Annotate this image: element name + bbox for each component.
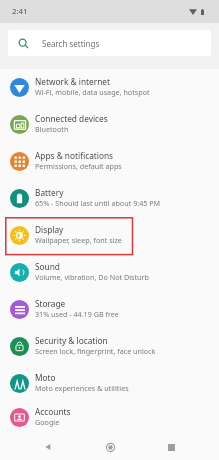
staticText: Wallpaper, sleep, font size [35, 235, 122, 245]
button[interactable]: Apps & notifications [0, 143, 219, 180]
button[interactable]: Recents [158, 434, 184, 460]
staticText: Accounts [35, 406, 71, 417]
button[interactable]: Search settings [8, 30, 211, 56]
button[interactable]: Connected devices [0, 106, 219, 143]
button[interactable]: Battery [0, 180, 219, 217]
staticText: Sound [35, 261, 60, 272]
staticText: Moto experiences & utilities [35, 383, 129, 393]
staticText: Security & location [35, 335, 108, 346]
staticText: Battery [35, 187, 64, 198]
staticText: Storage [35, 298, 66, 309]
staticText: Connected devices [35, 113, 108, 124]
button[interactable]: Accounts [0, 402, 219, 433]
button[interactable]: Moto [0, 365, 219, 402]
staticText: Permissions, default apps [35, 161, 122, 171]
staticText: Moto [35, 372, 56, 383]
button[interactable]: Sound [0, 254, 219, 291]
staticText: Display [35, 224, 64, 235]
staticText: Bluetooth [35, 124, 69, 134]
staticText: Search settings [42, 38, 100, 49]
button[interactable]: Network & internet [0, 69, 219, 106]
button[interactable]: Display [0, 217, 219, 254]
button[interactable]: Security & location [0, 328, 219, 365]
staticText: Google [35, 417, 60, 427]
staticText: Apps & notifications [35, 150, 114, 161]
staticText: Network & internet [35, 76, 110, 87]
staticText: 2:41 [12, 6, 28, 17]
staticText: 31% used - 44.19 GB free [35, 309, 119, 319]
staticText: Volume, vibration, Do Not Disturb [35, 272, 149, 282]
staticText: Wi-Fi, mobile, data usage, hotspot [35, 87, 150, 97]
staticText: Screen lock, fingerprint, face unlock [35, 346, 156, 356]
button[interactable]: Home [97, 434, 123, 460]
button[interactable]: Storage [0, 291, 219, 328]
button[interactable]: Back [35, 434, 61, 460]
staticText: 65% - Should last until about 9:45 PM [35, 198, 161, 208]
